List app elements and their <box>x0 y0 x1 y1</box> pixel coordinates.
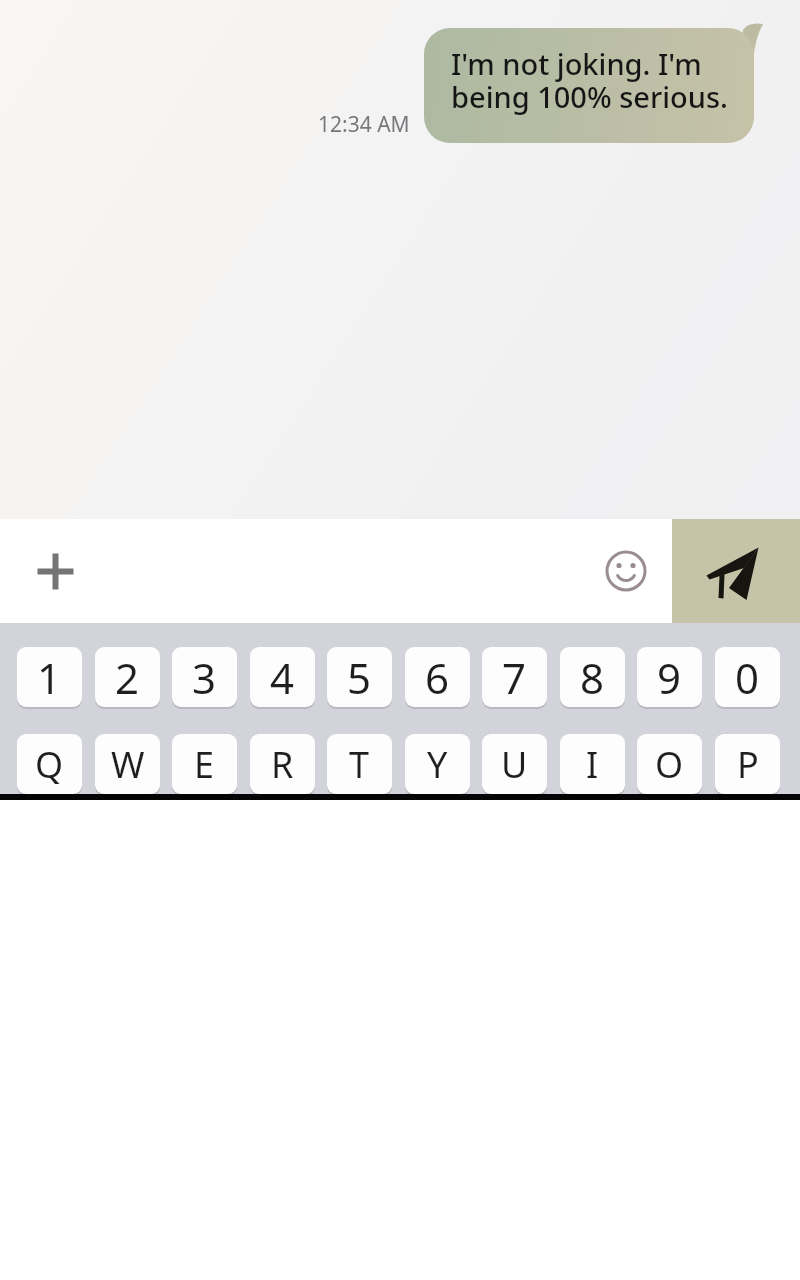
staticText: 3 <box>192 649 217 706</box>
button[interactable]: Q <box>17 734 82 794</box>
staticText: R <box>271 740 294 789</box>
staticText: 8 <box>580 649 605 706</box>
button[interactable]: U <box>482 734 547 794</box>
button[interactable]: R <box>250 734 315 794</box>
staticText: 6 <box>425 649 450 706</box>
button[interactable]: W <box>95 734 160 794</box>
button[interactable]: T <box>327 734 392 794</box>
button[interactable]: 5 <box>327 647 392 707</box>
button[interactable]: 4 <box>250 647 315 707</box>
staticText: I <box>586 740 599 789</box>
button[interactable] <box>600 545 652 597</box>
staticText: Q <box>35 740 64 789</box>
button[interactable]: I <box>560 734 625 794</box>
staticText: P <box>737 740 759 789</box>
staticText: T <box>349 740 370 789</box>
staticText: 2 <box>115 649 140 706</box>
button[interactable]: 8 <box>560 647 625 707</box>
button[interactable]: 3 <box>172 647 237 707</box>
button[interactable]: 2 <box>95 647 160 707</box>
button[interactable]: 7 <box>482 647 547 707</box>
button[interactable]: E <box>172 734 237 794</box>
staticText: 1 <box>37 649 62 706</box>
staticText: 7 <box>502 649 527 706</box>
button[interactable] <box>8 524 103 619</box>
staticText: E <box>194 740 215 789</box>
staticText: 5 <box>347 649 372 706</box>
staticText: W <box>111 740 145 789</box>
staticText: U <box>501 740 528 789</box>
staticText: 4 <box>270 649 295 706</box>
button[interactable]: 9 <box>637 647 702 707</box>
staticText: 9 <box>657 649 682 706</box>
button[interactable]: 0 <box>715 647 780 707</box>
button[interactable]: 1 <box>17 647 82 707</box>
button[interactable] <box>672 519 800 623</box>
button[interactable]: 6 <box>405 647 470 707</box>
button[interactable]: Y <box>405 734 470 794</box>
button[interactable]: O <box>637 734 702 794</box>
button[interactable]: P <box>715 734 780 794</box>
staticText: O <box>655 740 684 789</box>
staticText: 0 <box>735 649 760 706</box>
staticText: Y <box>427 740 448 789</box>
staticText: 12:34 AM <box>318 110 410 139</box>
staticText: I'm not joking. I'm being 100% serious. <box>451 44 728 116</box>
